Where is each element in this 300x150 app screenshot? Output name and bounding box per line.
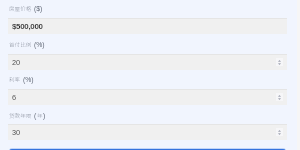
button[interactable]: 6 xyxy=(8,89,287,105)
staticText: ) xyxy=(43,112,46,120)
staticText: (%) xyxy=(21,76,34,84)
button[interactable]: Stepper xyxy=(276,128,283,136)
staticText: ($) xyxy=(32,5,43,13)
staticText: (%) xyxy=(32,41,45,49)
staticText: ( xyxy=(32,112,37,120)
button[interactable]: Stepper xyxy=(276,58,283,66)
staticText: 房屋价格 xyxy=(9,5,32,13)
staticText: 20 xyxy=(12,58,21,66)
staticText: 30 xyxy=(12,128,21,136)
staticText: 利率 xyxy=(9,76,21,84)
button[interactable]: 20 xyxy=(8,54,287,70)
button[interactable]: $500,000 xyxy=(8,18,287,34)
staticText: 年 xyxy=(37,112,43,120)
staticText: 首付比例 xyxy=(9,41,32,49)
staticText: $500,000 xyxy=(12,22,43,31)
button[interactable]: Stepper xyxy=(276,93,283,101)
button[interactable] xyxy=(9,148,286,150)
button[interactable]: 30 xyxy=(8,124,287,140)
staticText: 6 xyxy=(12,93,17,101)
staticText: 贷款年限 xyxy=(9,112,32,120)
